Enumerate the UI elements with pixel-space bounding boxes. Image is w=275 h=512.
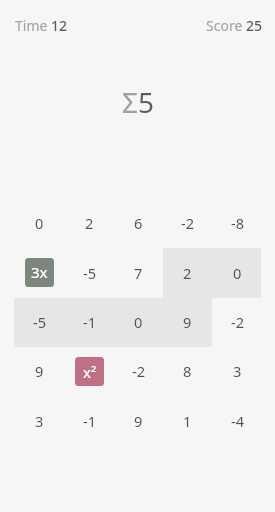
button[interactable]: 2 [163, 248, 212, 297]
button[interactable]: -2 [213, 297, 262, 346]
staticText: 9 [134, 411, 143, 431]
staticText: -1 [83, 411, 97, 431]
button[interactable]: -1 [65, 396, 114, 445]
button[interactable]: -8 [213, 198, 262, 247]
staticText: -4 [231, 411, 245, 431]
staticText: 3 [35, 411, 44, 431]
button[interactable]: 8 [163, 346, 212, 395]
staticText: x² [83, 362, 97, 382]
button[interactable]: 7 [114, 248, 163, 297]
staticText: 2 [183, 263, 192, 283]
button[interactable]: Triple multiplier tile [15, 248, 64, 297]
staticText: Time [15, 16, 48, 35]
staticText: 1 [183, 411, 192, 431]
button[interactable]: -2 [114, 346, 163, 395]
button[interactable]: 9 [114, 396, 163, 445]
staticText: 12 [51, 16, 68, 35]
staticText: 9 [35, 361, 44, 381]
staticText: 0 [134, 312, 143, 332]
staticText: -2 [231, 312, 245, 332]
staticText: -5 [33, 312, 47, 332]
staticText: 9 [183, 312, 192, 332]
staticText: 25 [246, 16, 263, 35]
button[interactable]: 6 [114, 198, 163, 247]
button[interactable]: -1 [65, 297, 114, 346]
staticText: 3x [31, 262, 48, 282]
staticText: -8 [231, 213, 245, 233]
staticText: 0 [35, 213, 44, 233]
button[interactable]: 1 [163, 396, 212, 445]
button[interactable]: 9 [163, 297, 212, 346]
button[interactable]: Score [206, 16, 263, 35]
button[interactable]: 3 [15, 396, 64, 445]
button[interactable]: -2 [163, 198, 212, 247]
button[interactable]: -5 [15, 297, 64, 346]
staticText: 3 [233, 361, 242, 381]
button[interactable]: 2 [65, 198, 114, 247]
staticText: -1 [83, 312, 97, 332]
staticText: -5 [83, 263, 97, 283]
staticText: 0 [233, 263, 242, 283]
staticText: -2 [181, 213, 195, 233]
staticText: -2 [132, 361, 146, 381]
button[interactable]: Time [15, 16, 68, 35]
button[interactable]: 0 [213, 248, 262, 297]
button[interactable]: -5 [65, 248, 114, 297]
staticText: 2 [85, 213, 94, 233]
staticText: 7 [134, 263, 143, 283]
button[interactable]: Square multiplier tile [65, 346, 114, 395]
button[interactable]: 3 [213, 346, 262, 395]
button[interactable]: -4 [213, 396, 262, 445]
staticText: Σ5 [122, 83, 155, 121]
button[interactable]: 0 [114, 297, 163, 346]
staticText: 6 [134, 213, 143, 233]
button[interactable]: 0 [15, 198, 64, 247]
button[interactable]: 9 [15, 346, 64, 395]
staticText: Score [206, 16, 243, 35]
staticText: 8 [183, 361, 192, 381]
